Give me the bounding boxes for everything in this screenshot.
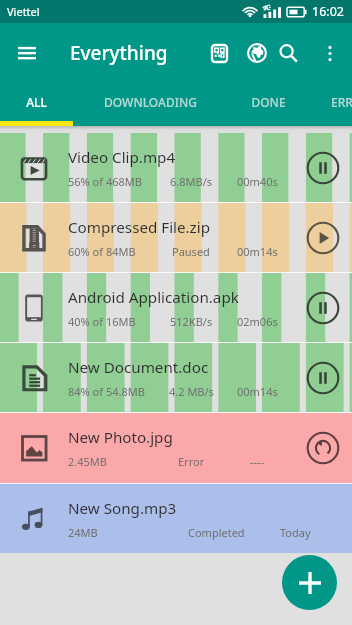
- staticText: 2.45MB: [68, 454, 107, 469]
- staticText: 4.2 MB/s: [169, 384, 214, 399]
- button[interactable]: New Song.mp3: [0, 484, 352, 553]
- button[interactable]: Retry download: [294, 413, 352, 483]
- button[interactable]: Pause download: [294, 273, 352, 342]
- staticText: DOWNLOADING: [104, 94, 197, 110]
- button[interactable]: ALL: [0, 82, 73, 121]
- staticText: ALL: [26, 94, 47, 110]
- staticText: Error: [178, 454, 205, 469]
- button[interactable]: DOWNLOADING: [73, 82, 227, 121]
- staticText: Everything: [70, 40, 168, 66]
- staticText: New Photo.jpg: [68, 427, 173, 448]
- staticText: Compressed File.zip: [68, 217, 211, 238]
- staticText: 56% of 468MB: [68, 174, 142, 189]
- staticText: 00m14s: [237, 384, 278, 399]
- button[interactable]: Open browser: [236, 30, 278, 76]
- staticText: 84% of 54.8MB: [68, 384, 145, 399]
- staticText: DONE: [251, 94, 286, 110]
- button[interactable]: Open navigation drawer: [7, 33, 47, 73]
- staticText: 512KB/s: [170, 314, 213, 329]
- staticText: ----: [250, 454, 265, 469]
- button[interactable]: Compressed File.zip: [0, 203, 352, 272]
- button[interactable]: Search: [267, 30, 309, 76]
- staticText: 02m06s: [237, 314, 278, 329]
- staticText: Video Clip.mp4: [68, 147, 176, 168]
- button[interactable]: Pause download: [294, 343, 352, 412]
- staticText: ERROR: [331, 94, 352, 110]
- button[interactable]: New Document.doc: [0, 343, 352, 412]
- staticText: New Document.doc: [68, 357, 209, 378]
- staticText: New Song.mp3: [68, 498, 177, 519]
- staticText: 60% of 84MB: [68, 244, 136, 259]
- button[interactable]: Android Application.apk: [0, 273, 352, 342]
- staticText: Android Application.apk: [68, 287, 239, 308]
- button[interactable]: ERROR: [309, 82, 352, 121]
- staticText: 24MB: [68, 525, 98, 540]
- button[interactable]: Resume download: [294, 203, 352, 272]
- staticText: 00m14s: [237, 244, 278, 259]
- staticText: Today: [280, 525, 311, 540]
- staticText: Completed: [188, 525, 245, 540]
- button[interactable]: Video Clip.mp4: [0, 133, 352, 202]
- staticText: 16:02: [312, 3, 344, 20]
- button[interactable]: Pause download: [294, 133, 352, 202]
- button[interactable]: Add download: [282, 555, 337, 610]
- button[interactable]: Scan QR code: [198, 30, 240, 76]
- staticText: Viettel: [7, 4, 40, 19]
- button[interactable]: New Photo.jpg: [0, 413, 352, 483]
- staticText: 6.8MB/s: [170, 174, 213, 189]
- staticText: 40% of 16MB: [68, 314, 136, 329]
- staticText: Paused: [172, 244, 210, 259]
- button[interactable]: More options: [309, 30, 351, 76]
- button[interactable]: DONE: [227, 82, 309, 121]
- staticText: 00m40s: [237, 174, 278, 189]
